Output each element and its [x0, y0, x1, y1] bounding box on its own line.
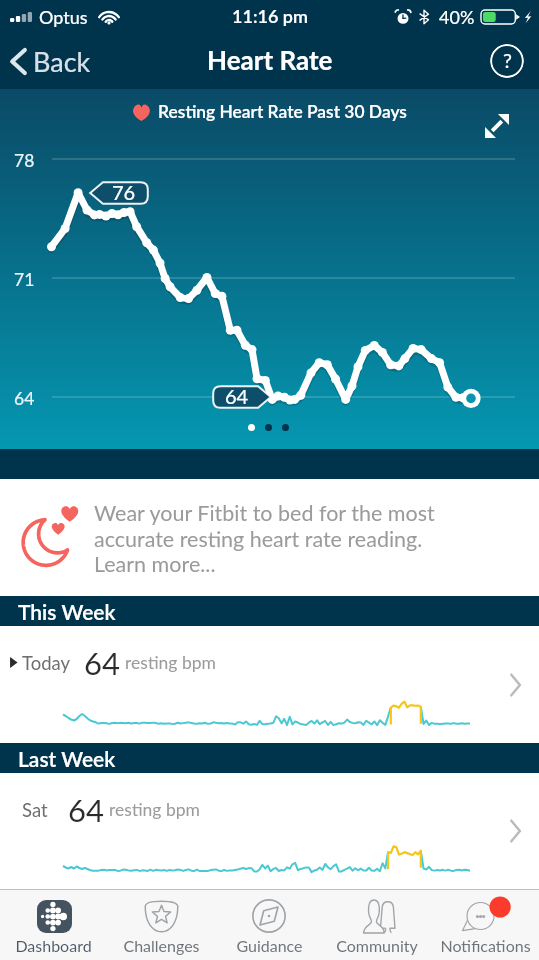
staticText: 71 — [14, 269, 35, 290]
staticText: resting bpm — [125, 652, 216, 673]
staticText: Dashboard — [15, 936, 92, 955]
staticText: This Week — [18, 599, 116, 624]
button[interactable]: Wear your Fitbit to bed for the most acc… — [0, 479, 539, 596]
button[interactable]: Help — [490, 44, 524, 78]
staticText: Community — [336, 936, 418, 955]
button[interactable]: Sat — [0, 773, 539, 889]
staticText: 40% — [439, 6, 475, 28]
button[interactable]: Notifications — [431, 890, 539, 960]
button[interactable]: Today — [0, 626, 539, 743]
staticText: 78 — [14, 150, 35, 171]
staticText: Optus — [39, 6, 88, 28]
staticText: Notifications — [440, 936, 531, 955]
button[interactable]: Challenges — [107, 890, 215, 960]
staticText: Resting Heart Rate Past 30 Days — [158, 101, 407, 122]
staticText: Back — [33, 45, 91, 77]
staticText: 64 — [14, 388, 35, 409]
button[interactable]: Expand chart — [477, 106, 517, 146]
button[interactable]: Dashboard — [0, 890, 107, 960]
staticText: Today — [22, 652, 71, 674]
staticText: 64 — [68, 791, 104, 828]
staticText: Challenges — [123, 936, 200, 955]
staticText: 76 — [112, 180, 136, 204]
staticText: 64 — [225, 384, 249, 408]
staticText: resting bpm — [109, 799, 200, 820]
staticText: 11:16 pm — [232, 5, 308, 27]
staticText: 64 — [84, 644, 120, 681]
staticText: ? — [503, 48, 512, 72]
staticText: Heart Rate — [207, 44, 333, 75]
button[interactable]: Guidance — [215, 890, 323, 960]
staticText: Last Week — [18, 746, 116, 771]
staticText: Wear your Fitbit to bed for the most acc… — [94, 500, 435, 576]
button[interactable]: Back — [0, 41, 103, 81]
staticText: Sat — [22, 799, 48, 821]
staticText: Guidance — [236, 936, 303, 955]
button[interactable]: Community — [323, 890, 431, 960]
